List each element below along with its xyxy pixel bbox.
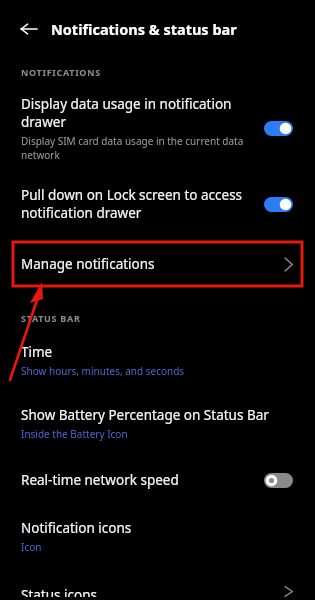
button[interactable]: Show Battery Percentage on Status Bar <box>0 403 315 444</box>
staticText: Time <box>21 343 53 361</box>
button[interactable]: Back <box>14 14 44 44</box>
button[interactable]: Time <box>0 340 315 381</box>
staticText: Manage notifications <box>21 255 284 273</box>
staticText: Show hours, minutes, and seconds <box>21 364 185 378</box>
staticText: Display SIM card data usage in the curre… <box>21 134 252 162</box>
button[interactable]: Display data usage in notification drawe… <box>0 92 315 165</box>
button[interactable]: Pull down on Lock screen to access notif… <box>0 183 315 225</box>
button[interactable]: Real-time network speed <box>0 468 315 492</box>
button[interactable]: Notification icons <box>0 516 315 557</box>
staticText: Icon <box>21 540 42 554</box>
staticText: Status icons <box>21 586 97 597</box>
staticText: Real-time network speed <box>21 471 179 489</box>
staticText: Show Battery Percentage on Status Bar <box>21 406 269 424</box>
button[interactable]: Manage notifications <box>13 242 302 286</box>
button[interactable]: Status icons <box>0 583 315 600</box>
staticText: STATUS BAR <box>21 312 81 324</box>
staticText: Notifications & status bar <box>51 19 237 39</box>
staticText: Inside the Battery Icon <box>21 427 128 441</box>
staticText: Notification icons <box>21 519 132 537</box>
staticText: Pull down on Lock screen to access notif… <box>21 186 252 222</box>
staticText: NOTIFICATIONS <box>21 66 101 78</box>
staticText: Display data usage in notification drawe… <box>21 95 252 131</box>
